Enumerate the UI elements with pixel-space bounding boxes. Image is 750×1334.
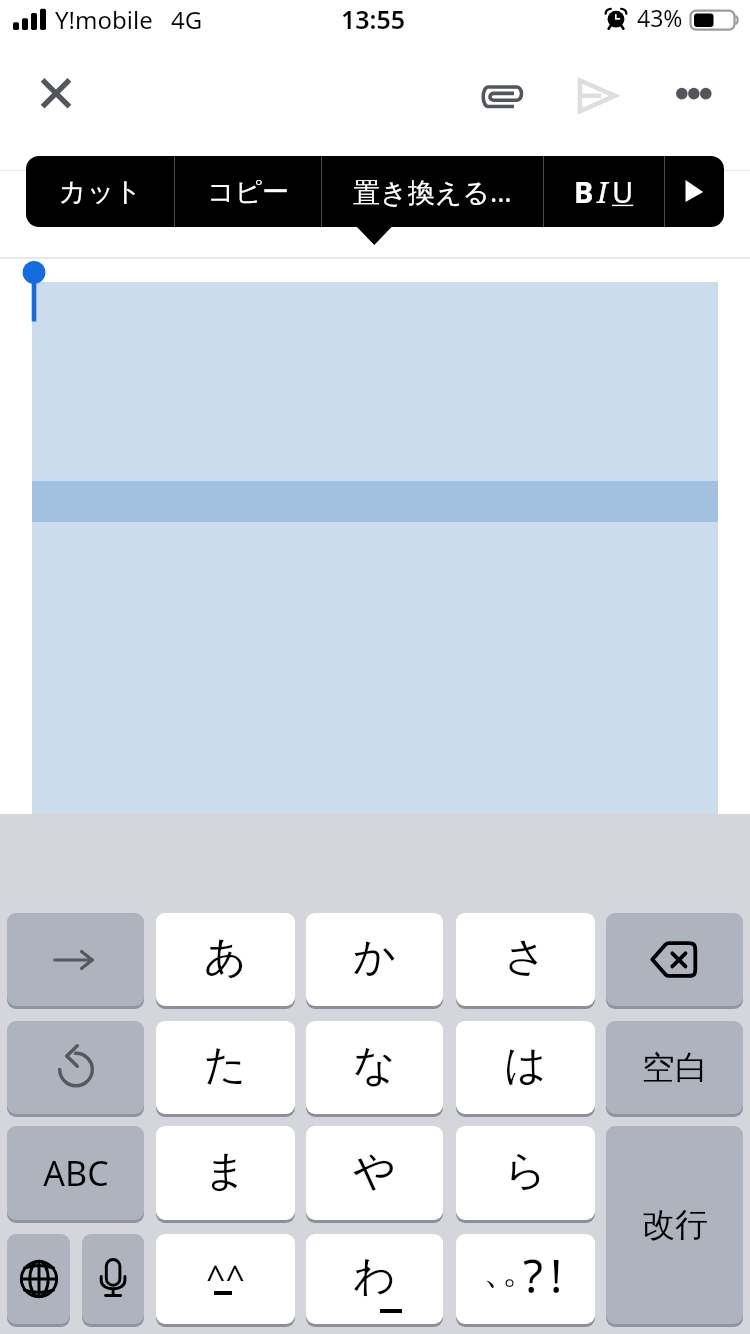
staticText: 、 bbox=[483, 1248, 519, 1293]
button[interactable]: More options bbox=[658, 60, 730, 124]
button[interactable]: Undo bbox=[7, 1021, 144, 1114]
staticText: ! bbox=[550, 1244, 563, 1307]
staticText: は bbox=[504, 1039, 547, 1092]
button[interactable]: Delete bbox=[606, 913, 743, 1006]
staticText: 43% bbox=[637, 2, 683, 33]
button[interactable]: Attach file bbox=[466, 56, 538, 120]
staticText: ? bbox=[523, 1244, 543, 1307]
button[interactable]: Punctuation bbox=[456, 1234, 595, 1324]
button[interactable]: さ bbox=[456, 913, 595, 1006]
button[interactable]: ^^ bbox=[156, 1234, 295, 1324]
staticText: ABC bbox=[43, 1150, 109, 1196]
staticText: や bbox=[353, 1145, 396, 1198]
staticText: ま bbox=[204, 1145, 247, 1198]
button[interactable]: あ bbox=[156, 913, 295, 1006]
button[interactable]: わ bbox=[306, 1234, 443, 1324]
staticText: B bbox=[574, 172, 594, 211]
button[interactable]: な bbox=[306, 1021, 443, 1114]
button[interactable]: Change keyboard bbox=[7, 1234, 70, 1324]
staticText: な bbox=[353, 1039, 396, 1092]
button[interactable]: ら bbox=[456, 1126, 595, 1220]
button[interactable]: や bbox=[306, 1126, 443, 1220]
staticText: 13:55 bbox=[341, 2, 406, 36]
button[interactable]: か bbox=[306, 913, 443, 1006]
staticText: U bbox=[612, 172, 634, 211]
staticText: 置き換える... bbox=[353, 173, 512, 210]
button[interactable]: Voice input bbox=[82, 1234, 144, 1324]
button[interactable]: た bbox=[156, 1021, 295, 1114]
button[interactable]: ABC bbox=[7, 1126, 144, 1220]
staticText: わ bbox=[353, 1250, 396, 1303]
staticText: あ bbox=[204, 931, 247, 984]
staticText: 4G bbox=[171, 3, 203, 36]
staticText: カット bbox=[59, 175, 142, 209]
staticText: か bbox=[353, 931, 396, 984]
staticText: I bbox=[597, 172, 608, 211]
button[interactable]: コピー bbox=[175, 156, 321, 227]
staticText: 。 bbox=[502, 1248, 538, 1293]
button[interactable]: B bbox=[544, 156, 664, 227]
button[interactable]: Next character bbox=[7, 913, 144, 1006]
button[interactable]: 空白 bbox=[606, 1021, 743, 1114]
staticText: コピー bbox=[207, 175, 290, 209]
staticText: ^^ bbox=[206, 1254, 245, 1300]
button[interactable]: Close bbox=[20, 60, 92, 124]
button[interactable]: は bbox=[456, 1021, 595, 1114]
button[interactable]: 置き換える... bbox=[322, 156, 543, 227]
staticText: 改行 bbox=[642, 1204, 708, 1246]
button[interactable]: カット bbox=[26, 156, 174, 227]
button[interactable]: 改行 bbox=[606, 1126, 743, 1324]
button[interactable]: ま bbox=[156, 1126, 295, 1220]
staticText: 空白 bbox=[642, 1047, 708, 1089]
staticText: Y!mobile bbox=[55, 3, 153, 36]
staticText: さ bbox=[504, 931, 547, 984]
staticText: た bbox=[204, 1039, 247, 1092]
button[interactable]: More actions bbox=[665, 156, 724, 227]
staticText: ら bbox=[504, 1145, 547, 1198]
button[interactable]: Send bbox=[562, 56, 634, 120]
